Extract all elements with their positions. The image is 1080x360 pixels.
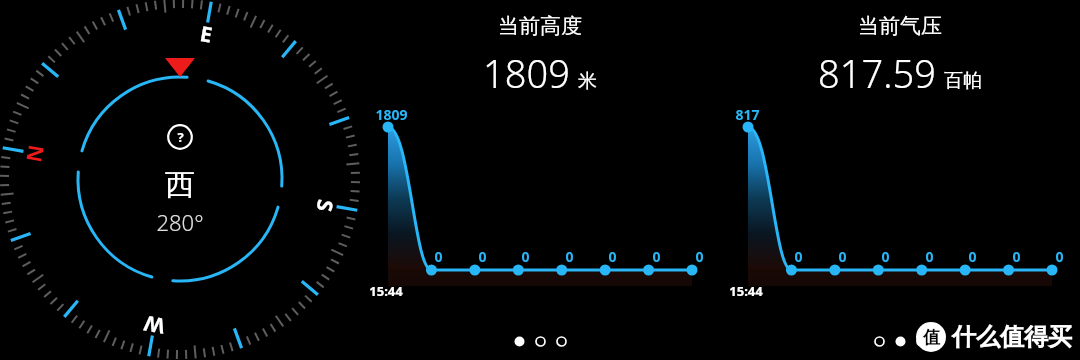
- staticText: 817.59: [818, 47, 936, 99]
- staticText: 米: [578, 69, 597, 93]
- staticText: 15:44: [729, 282, 763, 300]
- staticText: 0: [434, 247, 443, 266]
- staticText: 值: [923, 327, 940, 348]
- button[interactable]: Page 1: [874, 336, 885, 347]
- staticText: 0: [838, 247, 847, 266]
- staticText: 0: [695, 247, 704, 266]
- staticText: 0: [1055, 247, 1064, 266]
- button[interactable]: Calibration help: [167, 124, 193, 150]
- staticText: 0: [521, 247, 530, 266]
- staticText: 1809: [375, 105, 408, 124]
- button[interactable]: Page 2: [535, 336, 546, 347]
- staticText: S: [310, 197, 340, 214]
- staticText: 0: [794, 247, 803, 266]
- button[interactable]: 当前高度: [360, 0, 720, 360]
- button[interactable]: Page 3: [556, 336, 567, 347]
- staticText: 0: [652, 247, 661, 266]
- staticText: 0: [1012, 247, 1021, 266]
- staticText: 0: [925, 247, 934, 266]
- staticText: 百帕: [944, 69, 982, 93]
- button[interactable]: Page 1: [514, 336, 525, 347]
- staticText: 0: [565, 247, 574, 266]
- staticText: 当前气压: [858, 13, 942, 39]
- staticText: W: [142, 308, 167, 341]
- button[interactable]: Page 3: [916, 336, 927, 347]
- staticText: 280°: [156, 207, 204, 237]
- staticText: 817: [735, 105, 760, 124]
- staticText: 0: [478, 247, 487, 266]
- staticText: 什么值得买: [952, 322, 1072, 352]
- button[interactable]: Compass dial: [0, 0, 360, 360]
- staticText: 0: [881, 247, 890, 266]
- staticText: 1809: [483, 47, 570, 99]
- staticText: 0: [968, 247, 977, 266]
- staticText: ?: [177, 128, 184, 146]
- staticText: 西: [165, 166, 195, 204]
- staticText: E: [198, 19, 214, 50]
- staticText: 0: [608, 247, 617, 266]
- button[interactable]: 当前气压: [720, 0, 1080, 360]
- staticText: 15:44: [369, 282, 403, 300]
- staticText: N: [19, 142, 51, 165]
- button[interactable]: Page 2: [895, 336, 906, 347]
- staticText: 当前高度: [498, 13, 582, 39]
